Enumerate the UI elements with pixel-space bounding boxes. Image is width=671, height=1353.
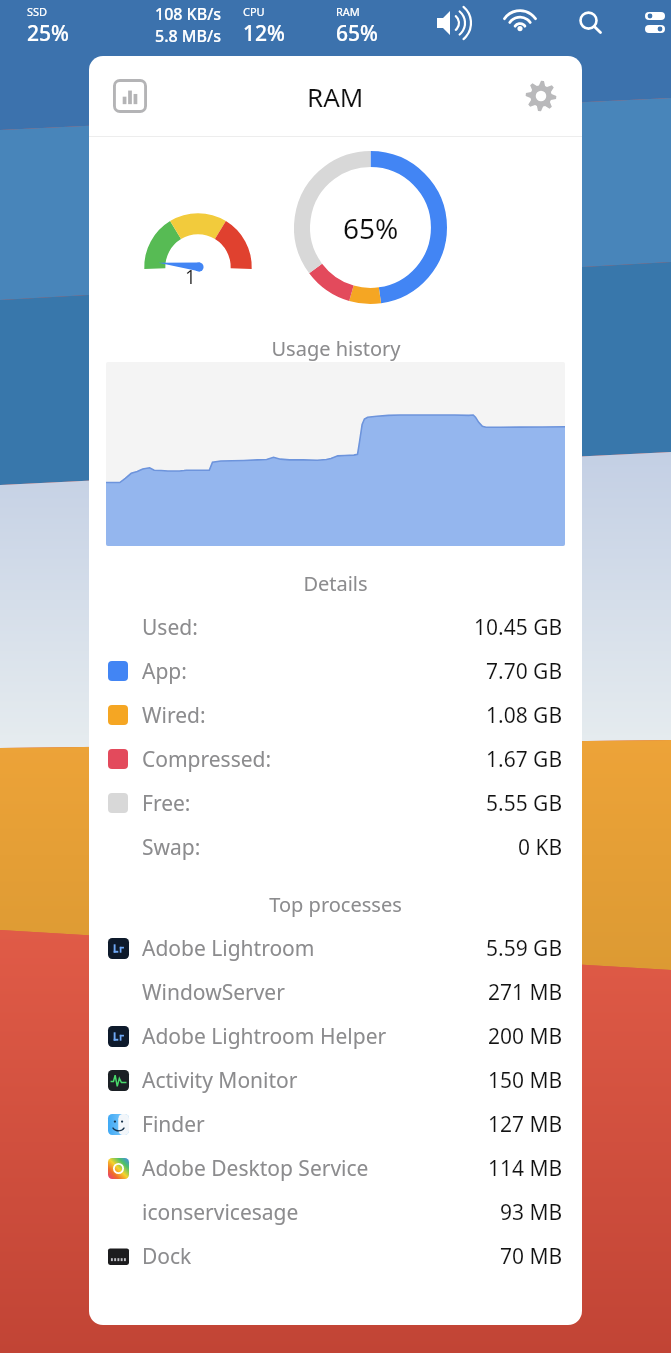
button[interactable]: iconservicesage	[108, 1190, 563, 1234]
button[interactable]: Volume	[437, 8, 467, 38]
staticText: iconservicesage	[142, 1198, 299, 1227]
staticText: 200 MB	[488, 1022, 563, 1051]
staticText: RAM	[307, 79, 364, 114]
staticText: CPU	[243, 4, 265, 19]
button[interactable]: Charts	[107, 73, 153, 119]
button[interactable]: Free:	[108, 781, 563, 825]
staticText: 93 MB	[500, 1198, 563, 1227]
staticText: Wired:	[142, 701, 206, 730]
button[interactable]: Finder	[108, 1102, 563, 1146]
staticText: 114 MB	[488, 1154, 563, 1183]
staticText: Compressed:	[142, 745, 272, 774]
staticText: Usage history	[271, 335, 401, 362]
staticText: 0 KB	[518, 833, 563, 862]
button[interactable]: Compressed:	[108, 737, 563, 781]
staticText: 271 MB	[488, 978, 563, 1007]
staticText: Adobe Desktop Service	[142, 1154, 369, 1183]
staticText: 7.70 GB	[486, 657, 563, 686]
staticText: 108 KB/s	[155, 3, 222, 25]
button[interactable]: Search	[575, 8, 605, 38]
staticText: Activity Monitor	[142, 1066, 298, 1095]
staticText: SSD	[27, 4, 48, 19]
staticText: 1.08 GB	[486, 701, 563, 730]
staticText: Top processes	[269, 891, 402, 918]
staticText: Swap:	[142, 833, 201, 862]
button[interactable]: Used:	[108, 605, 563, 649]
staticText: 25%	[27, 19, 69, 48]
staticText: 12%	[243, 19, 285, 48]
staticText: 70 MB	[500, 1242, 563, 1271]
staticText: 65%	[336, 19, 378, 48]
staticText: Free:	[142, 789, 191, 818]
staticText: 150 MB	[488, 1066, 563, 1095]
button[interactable]: Wi-Fi	[505, 8, 535, 38]
staticText: Adobe Lightroom Helper	[142, 1022, 387, 1051]
staticText: 127 MB	[488, 1110, 563, 1139]
staticText: 1	[185, 264, 196, 290]
staticText: RAM	[336, 4, 360, 19]
staticText: 5.59 GB	[486, 934, 563, 963]
staticText: Dock	[142, 1242, 192, 1271]
button[interactable]: Settings	[518, 73, 564, 119]
staticText: 5.8 MB/s	[155, 25, 221, 47]
button[interactable]: Activity Monitor	[108, 1058, 563, 1102]
staticText: WindowServer	[142, 978, 285, 1007]
staticText: 65%	[343, 209, 399, 247]
staticText: Details	[303, 570, 368, 597]
staticText: 5.55 GB	[486, 789, 563, 818]
button[interactable]: App:	[108, 649, 563, 693]
staticText: 10.45 GB	[474, 613, 563, 642]
button[interactable]: Adobe Lightroom Helper	[108, 1014, 563, 1058]
staticText: App:	[142, 657, 187, 686]
button[interactable]: Adobe Lightroom	[108, 926, 563, 970]
staticText: Finder	[142, 1110, 205, 1139]
staticText: Adobe Lightroom	[142, 934, 315, 963]
button[interactable]: Swap:	[108, 825, 563, 869]
button[interactable]: Control Center	[640, 8, 670, 38]
button[interactable]: WindowServer	[108, 970, 563, 1014]
button[interactable]: Wired:	[108, 693, 563, 737]
button[interactable]: Adobe Desktop Service	[108, 1146, 563, 1190]
staticText: Used:	[142, 613, 198, 642]
staticText: 1.67 GB	[486, 745, 563, 774]
button[interactable]: Dock	[108, 1234, 563, 1278]
